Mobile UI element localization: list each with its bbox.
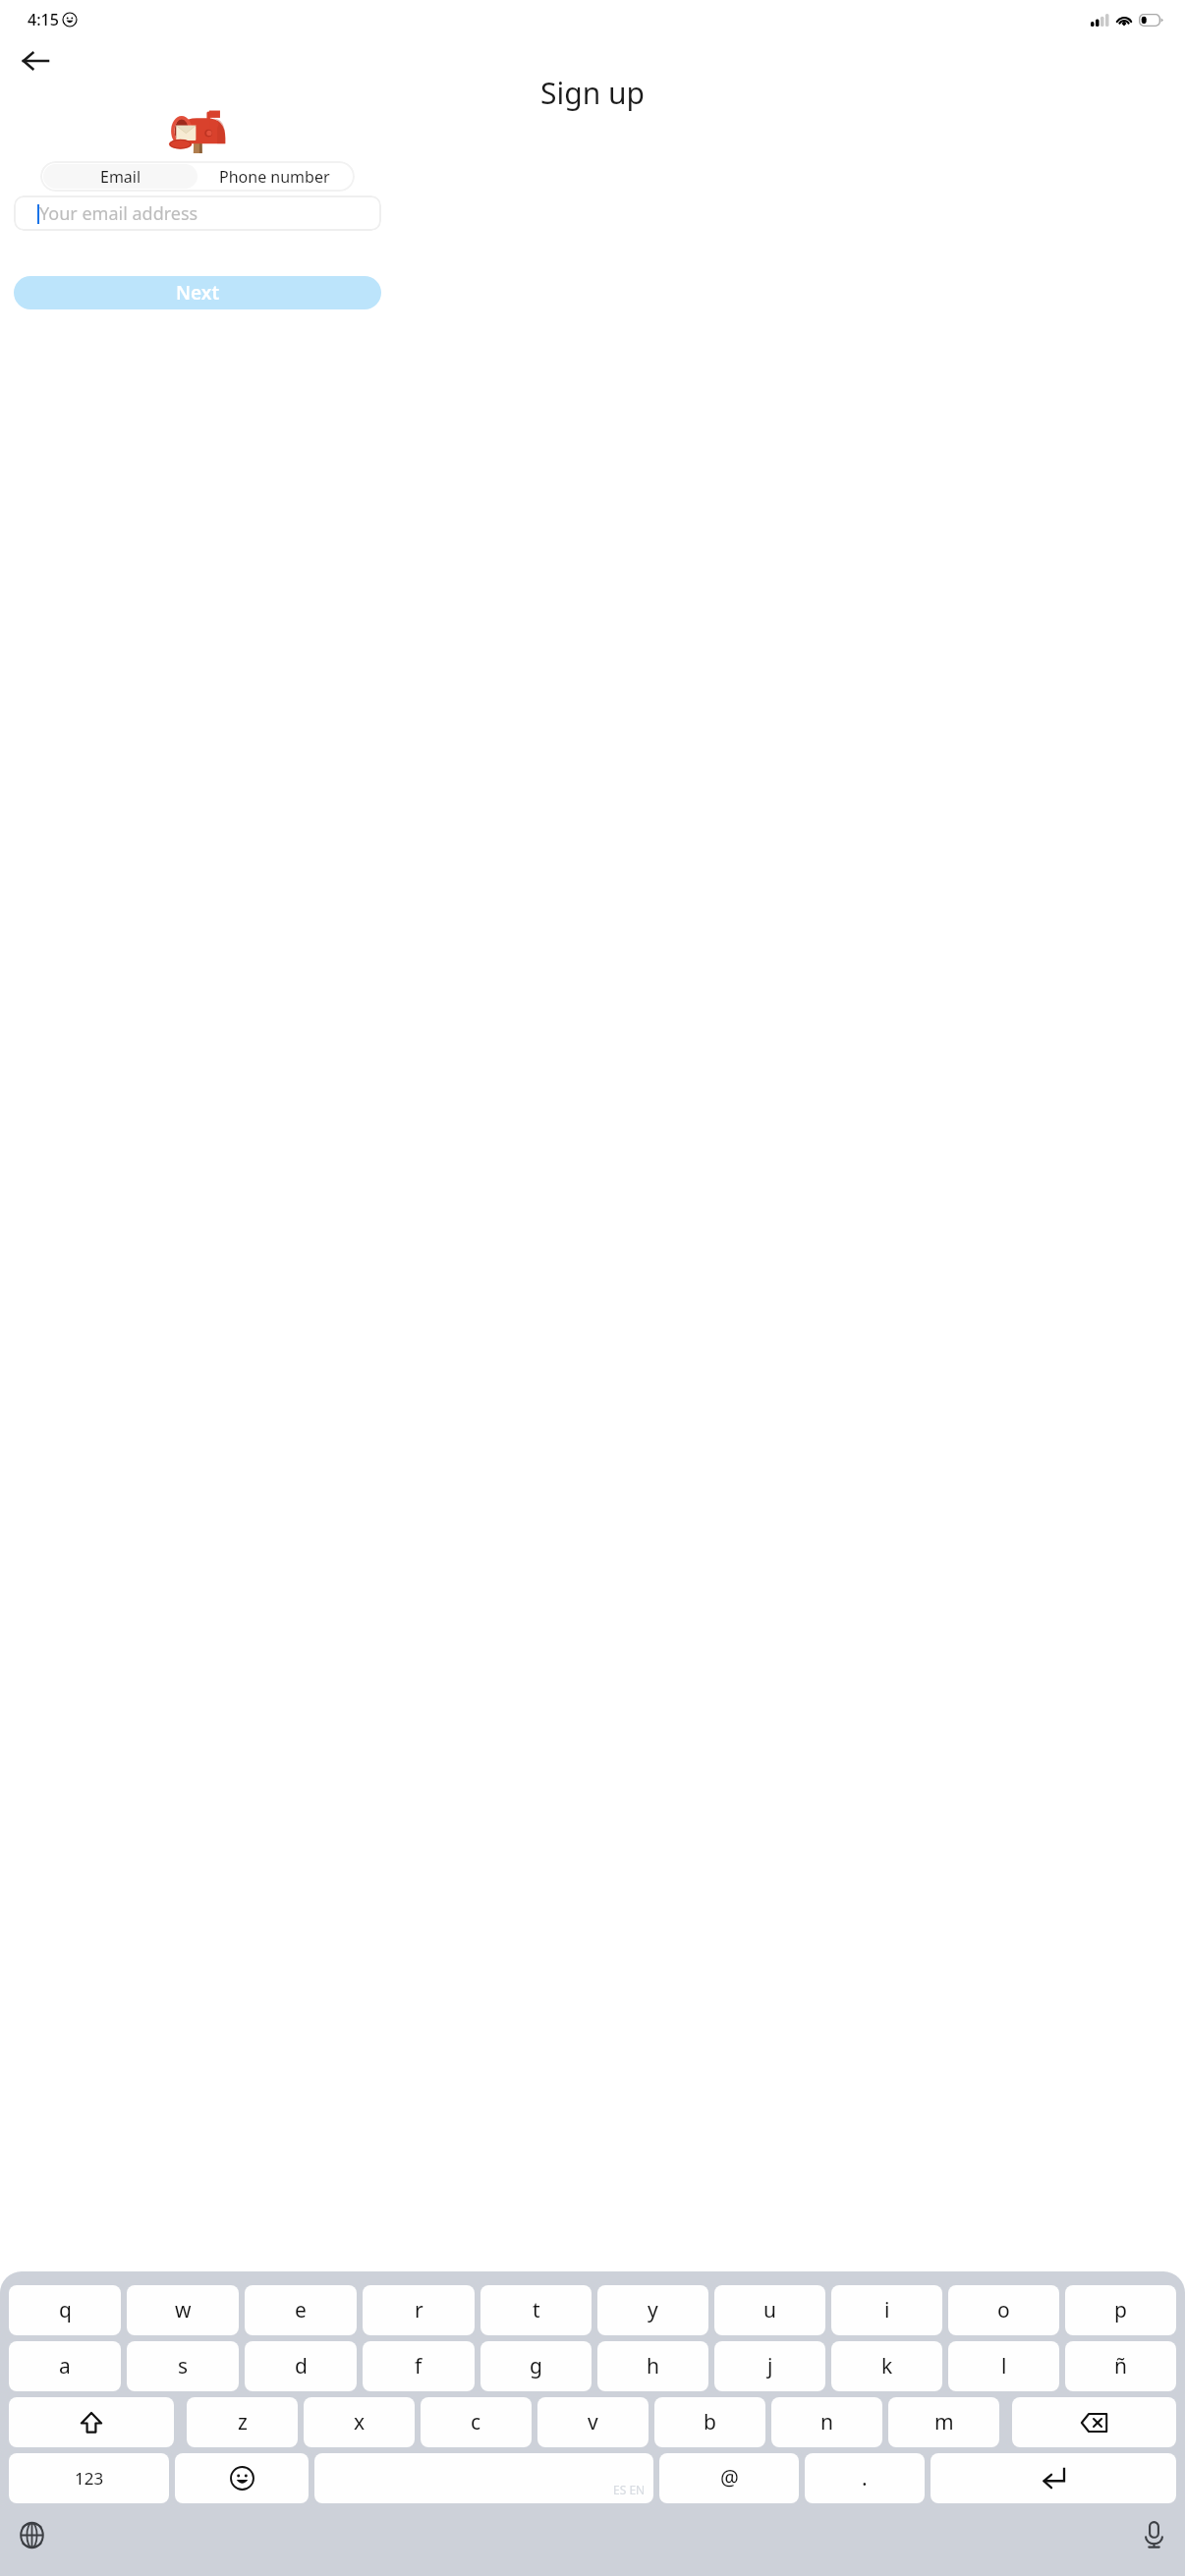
- button[interactable]: t: [480, 2285, 592, 2335]
- button[interactable]: p: [1065, 2285, 1176, 2335]
- button[interactable]: Backspace: [1012, 2397, 1176, 2447]
- button[interactable]: m: [888, 2397, 999, 2447]
- button[interactable]: Voice input: [1130, 2511, 1177, 2558]
- staticText: a: [59, 2352, 71, 2380]
- button[interactable]: .: [805, 2453, 925, 2503]
- button[interactable]: Phone number: [197, 164, 352, 189]
- button[interactable]: v: [537, 2397, 649, 2447]
- staticText: Email: [100, 166, 141, 188]
- staticText: b: [704, 2408, 716, 2436]
- button[interactable]: x: [304, 2397, 415, 2447]
- button[interactable]: Shift: [9, 2397, 174, 2447]
- staticText: g: [530, 2352, 542, 2380]
- button[interactable]: Next: [14, 276, 381, 309]
- button[interactable]: k: [831, 2341, 942, 2391]
- staticText: ES EN: [613, 2482, 646, 2497]
- button[interactable]: @: [659, 2453, 799, 2503]
- staticText: Sign up: [0, 73, 1185, 113]
- button[interactable]: o: [948, 2285, 1059, 2335]
- button[interactable]: Space: [314, 2453, 653, 2503]
- button[interactable]: h: [597, 2341, 708, 2391]
- button[interactable]: c: [421, 2397, 532, 2447]
- staticText: m: [934, 2408, 954, 2436]
- staticText: u: [763, 2296, 776, 2324]
- staticText: w: [175, 2296, 192, 2324]
- button[interactable]: f: [363, 2341, 475, 2391]
- button[interactable]: ñ: [1065, 2341, 1176, 2391]
- staticText: Next: [176, 280, 220, 306]
- button[interactable]: e: [245, 2285, 357, 2335]
- button[interactable]: 123: [9, 2453, 169, 2503]
- button[interactable]: Enter: [931, 2453, 1176, 2503]
- button[interactable]: i: [831, 2285, 942, 2335]
- staticText: p: [1114, 2296, 1127, 2324]
- button[interactable]: l: [948, 2341, 1059, 2391]
- staticText: z: [238, 2408, 248, 2436]
- staticText: j: [767, 2352, 773, 2380]
- staticText: c: [471, 2408, 481, 2436]
- staticText: i: [884, 2296, 890, 2324]
- button[interactable]: r: [363, 2285, 475, 2335]
- button[interactable]: n: [771, 2397, 882, 2447]
- button[interactable]: Your email address: [14, 196, 381, 231]
- staticText: ñ: [1114, 2352, 1127, 2380]
- staticText: Your email address: [39, 201, 198, 226]
- staticText: h: [647, 2352, 659, 2380]
- staticText: r: [415, 2296, 423, 2324]
- button[interactable]: j: [714, 2341, 825, 2391]
- staticText: .: [862, 2464, 868, 2492]
- button[interactable]: z: [187, 2397, 298, 2447]
- staticText: q: [59, 2296, 72, 2324]
- staticText: d: [295, 2352, 308, 2380]
- staticText: n: [820, 2408, 833, 2436]
- button[interactable]: u: [714, 2285, 825, 2335]
- button[interactable]: Emoji: [175, 2453, 309, 2503]
- button[interactable]: a: [9, 2341, 121, 2391]
- button[interactable]: q: [9, 2285, 121, 2335]
- button[interactable]: w: [127, 2285, 239, 2335]
- staticText: Phone number: [219, 166, 330, 188]
- button[interactable]: g: [480, 2341, 592, 2391]
- staticText: o: [997, 2296, 1010, 2324]
- staticText: 123: [75, 2467, 104, 2490]
- staticText: l: [1001, 2352, 1007, 2380]
- staticText: t: [533, 2296, 540, 2324]
- button[interactable]: y: [597, 2285, 708, 2335]
- staticText: y: [648, 2296, 658, 2324]
- staticText: v: [588, 2408, 598, 2436]
- button[interactable]: d: [245, 2341, 357, 2391]
- staticText: f: [415, 2352, 423, 2380]
- staticText: e: [295, 2296, 307, 2324]
- staticText: x: [354, 2408, 366, 2436]
- button[interactable]: s: [127, 2341, 239, 2391]
- staticText: @: [720, 2464, 739, 2492]
- staticText: k: [881, 2352, 893, 2380]
- button[interactable]: Back: [10, 35, 61, 86]
- button[interactable]: Change language: [8, 2511, 55, 2558]
- button[interactable]: b: [654, 2397, 765, 2447]
- staticText: 4:15: [28, 9, 59, 30]
- button[interactable]: Email: [43, 164, 197, 189]
- staticText: s: [178, 2352, 189, 2380]
